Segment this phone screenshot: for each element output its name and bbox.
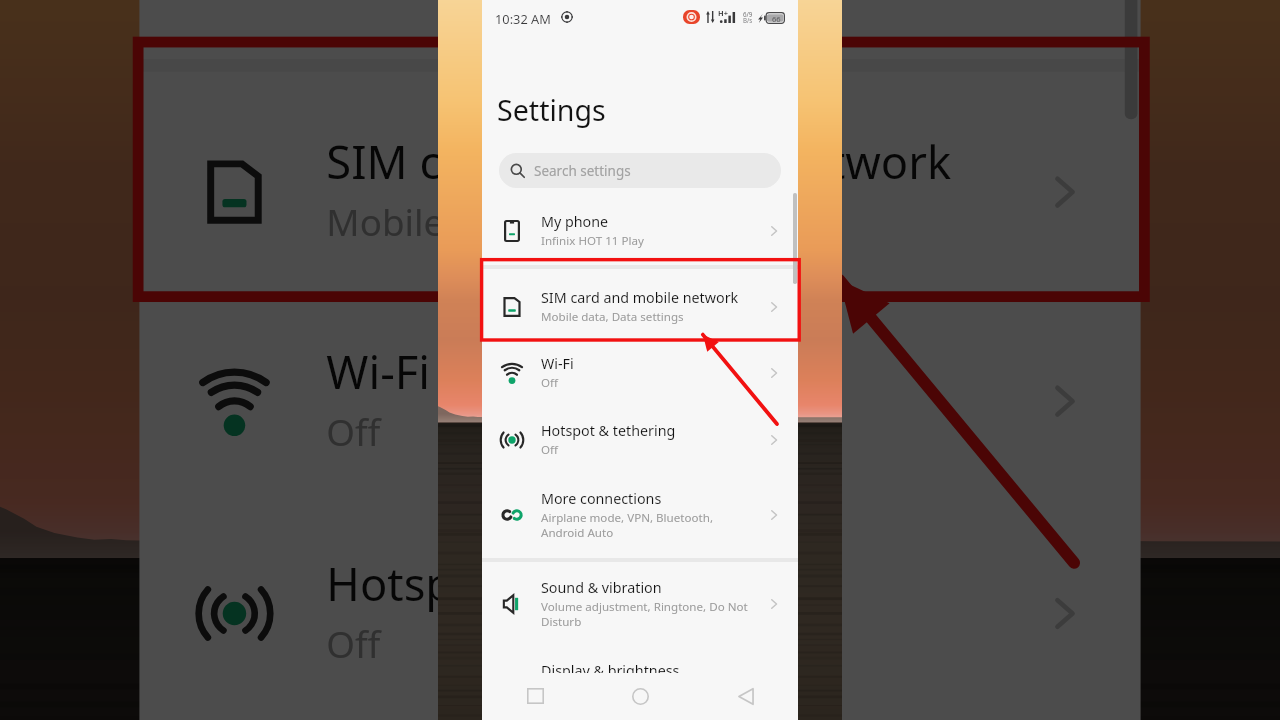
staticText: Airplane mode, VPN, Bluetooth, [541,510,713,526]
button[interactable]: Sound & vibration [482,565,798,623]
staticText: B/s [743,16,753,24]
staticText: Settings [497,90,606,129]
staticText: Volume adjustment, Ringtone, Do Not [541,599,748,615]
button[interactable]: Hotspot & tethering [482,408,798,452]
staticText: Wi-Fi [326,341,431,401]
staticText: 66 [772,14,781,24]
button[interactable]: Hotspot & tethering [139,512,1141,651]
staticText: Display & brightness [541,661,680,680]
staticText: Mobile data, Data settings [326,198,779,249]
staticText: 10:32 AM [495,10,551,27]
staticText: Mobile data, Data settings [541,309,684,325]
staticText: Android Auto [541,525,614,541]
button[interactable]: Display & brightness [482,648,798,692]
staticText: Disturb [541,614,582,630]
staticText: Infinix HOT 11 Play [326,0,653,8]
staticText: More connections [541,489,662,508]
staticText: Hotspot & tethering [326,553,754,613]
staticText: Off [541,375,559,391]
staticText: Sound & vibration [541,578,662,597]
button[interactable]: Search settings [499,153,781,188]
staticText: My phone [541,212,609,231]
button[interactable]: My phone [482,199,798,243]
staticText: Search settings [534,162,631,180]
staticText: Hotspot & tethering [541,421,676,440]
button[interactable]: More connections [482,476,798,534]
staticText: Off [326,407,383,458]
button[interactable]: SIM card and mobile network [139,91,1141,230]
button[interactable]: SIM card and mobile network [482,275,798,319]
button[interactable]: Wi-Fi [482,341,798,385]
button[interactable]: Wi-Fi [139,300,1141,439]
staticText: Infinix HOT 11 Play [541,233,644,249]
staticText: Off [326,620,383,670]
staticText: Brightness, Dark mode [541,682,667,698]
staticText: 6/9 [743,10,753,18]
staticText: SIM card and mobile network [326,132,954,192]
staticText: Wi-Fi [541,354,574,373]
staticText: H+ [718,8,728,18]
staticText: Off [541,442,559,458]
button[interactable]: Home [588,673,693,720]
staticText: SIM card and mobile network [541,288,739,307]
button[interactable]: Recent apps [482,673,588,720]
button[interactable]: Back [693,673,798,720]
